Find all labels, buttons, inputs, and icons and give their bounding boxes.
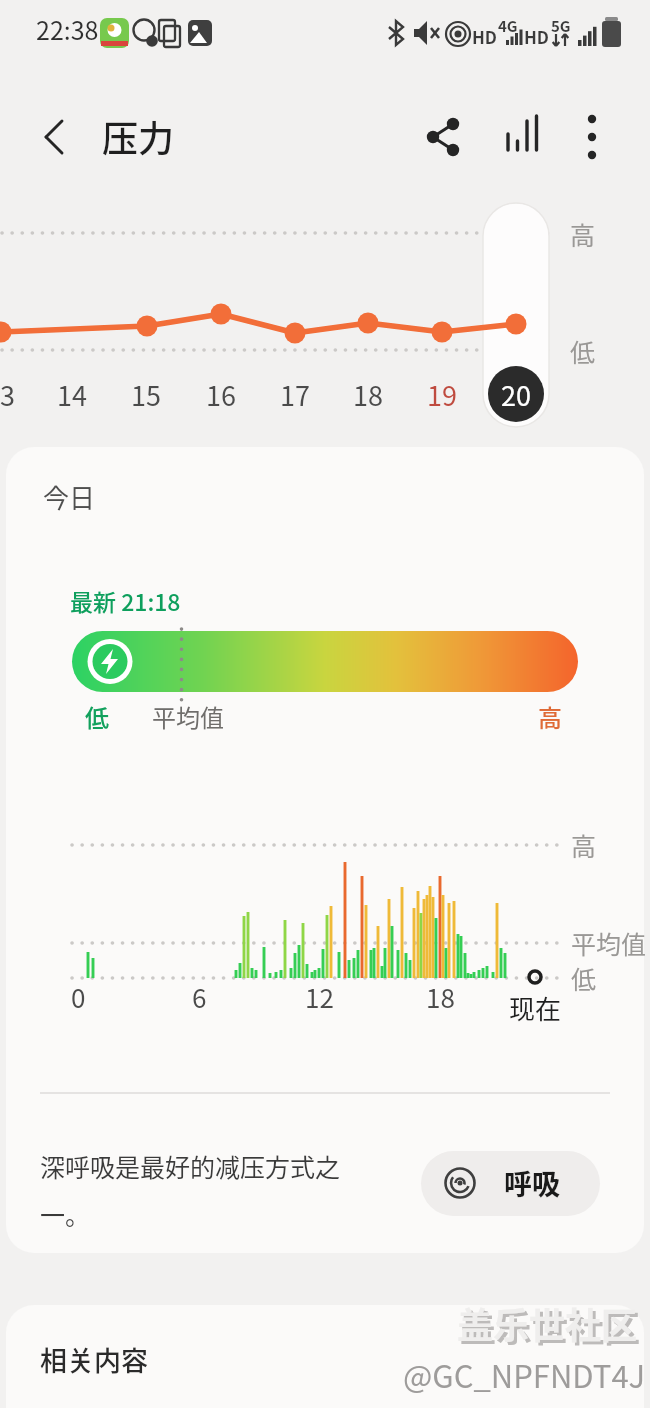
staticText: 6 [192, 978, 207, 1016]
staticText: 高 [570, 216, 596, 252]
staticText: @GC_NPFNDT4J [403, 1352, 646, 1397]
staticText: 今日 [43, 478, 96, 516]
staticText: 16 [206, 375, 236, 414]
staticText: 18 [353, 375, 383, 414]
staticText: 低 [571, 960, 597, 996]
staticText: 18 [426, 978, 455, 1016]
staticText: 高 [538, 699, 562, 734]
staticText: 17 [280, 375, 310, 414]
staticText: 平均值 [152, 699, 224, 734]
staticText: 盖乐世社区 [457, 1297, 638, 1349]
staticText: HD [472, 24, 498, 49]
staticText: 高 [571, 827, 597, 863]
staticText: HD [524, 24, 550, 49]
staticText: 最新 21:18 [70, 584, 181, 617]
staticText: 14 [57, 375, 87, 414]
staticText: 平均值 [571, 925, 647, 961]
staticText: 5G [551, 15, 571, 37]
staticText: 19 [427, 375, 457, 414]
staticText: 低 [570, 333, 596, 369]
staticText: 3 [0, 375, 15, 414]
staticText: 现在 [509, 989, 562, 1027]
staticText: 12 [305, 978, 334, 1016]
staticText: 4G [498, 15, 518, 37]
staticText: 15 [131, 375, 161, 414]
staticText: 低 [85, 699, 109, 734]
staticText: 压力 [102, 110, 175, 162]
staticText: 一。 [40, 1196, 91, 1232]
staticText: 深呼吸是最好的减压方式之 [40, 1148, 341, 1184]
staticText: 相关内容 [40, 1340, 148, 1379]
staticText: 盖乐世社区 [460, 1300, 641, 1352]
staticText: 呼吸 [504, 1163, 561, 1204]
staticText: 22:38 [36, 11, 99, 47]
staticText: 0 [71, 978, 86, 1016]
staticText: 20 [501, 375, 531, 414]
